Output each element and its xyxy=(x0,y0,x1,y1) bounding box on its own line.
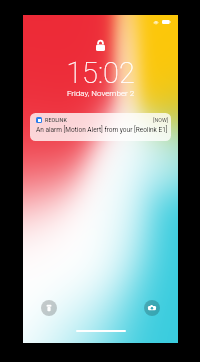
staticText: Friday, November 2 xyxy=(23,89,178,98)
staticText: [NOW] xyxy=(153,117,169,123)
button[interactable]: Flashlight xyxy=(41,300,57,316)
button[interactable]: Camera xyxy=(144,300,160,316)
button[interactable]: REOLINK xyxy=(30,113,171,141)
staticText: REOLINK xyxy=(45,117,67,123)
staticText: An alarm [Motion Alert] from your [Reoli… xyxy=(36,126,168,134)
staticText: 15:02 xyxy=(23,56,178,90)
